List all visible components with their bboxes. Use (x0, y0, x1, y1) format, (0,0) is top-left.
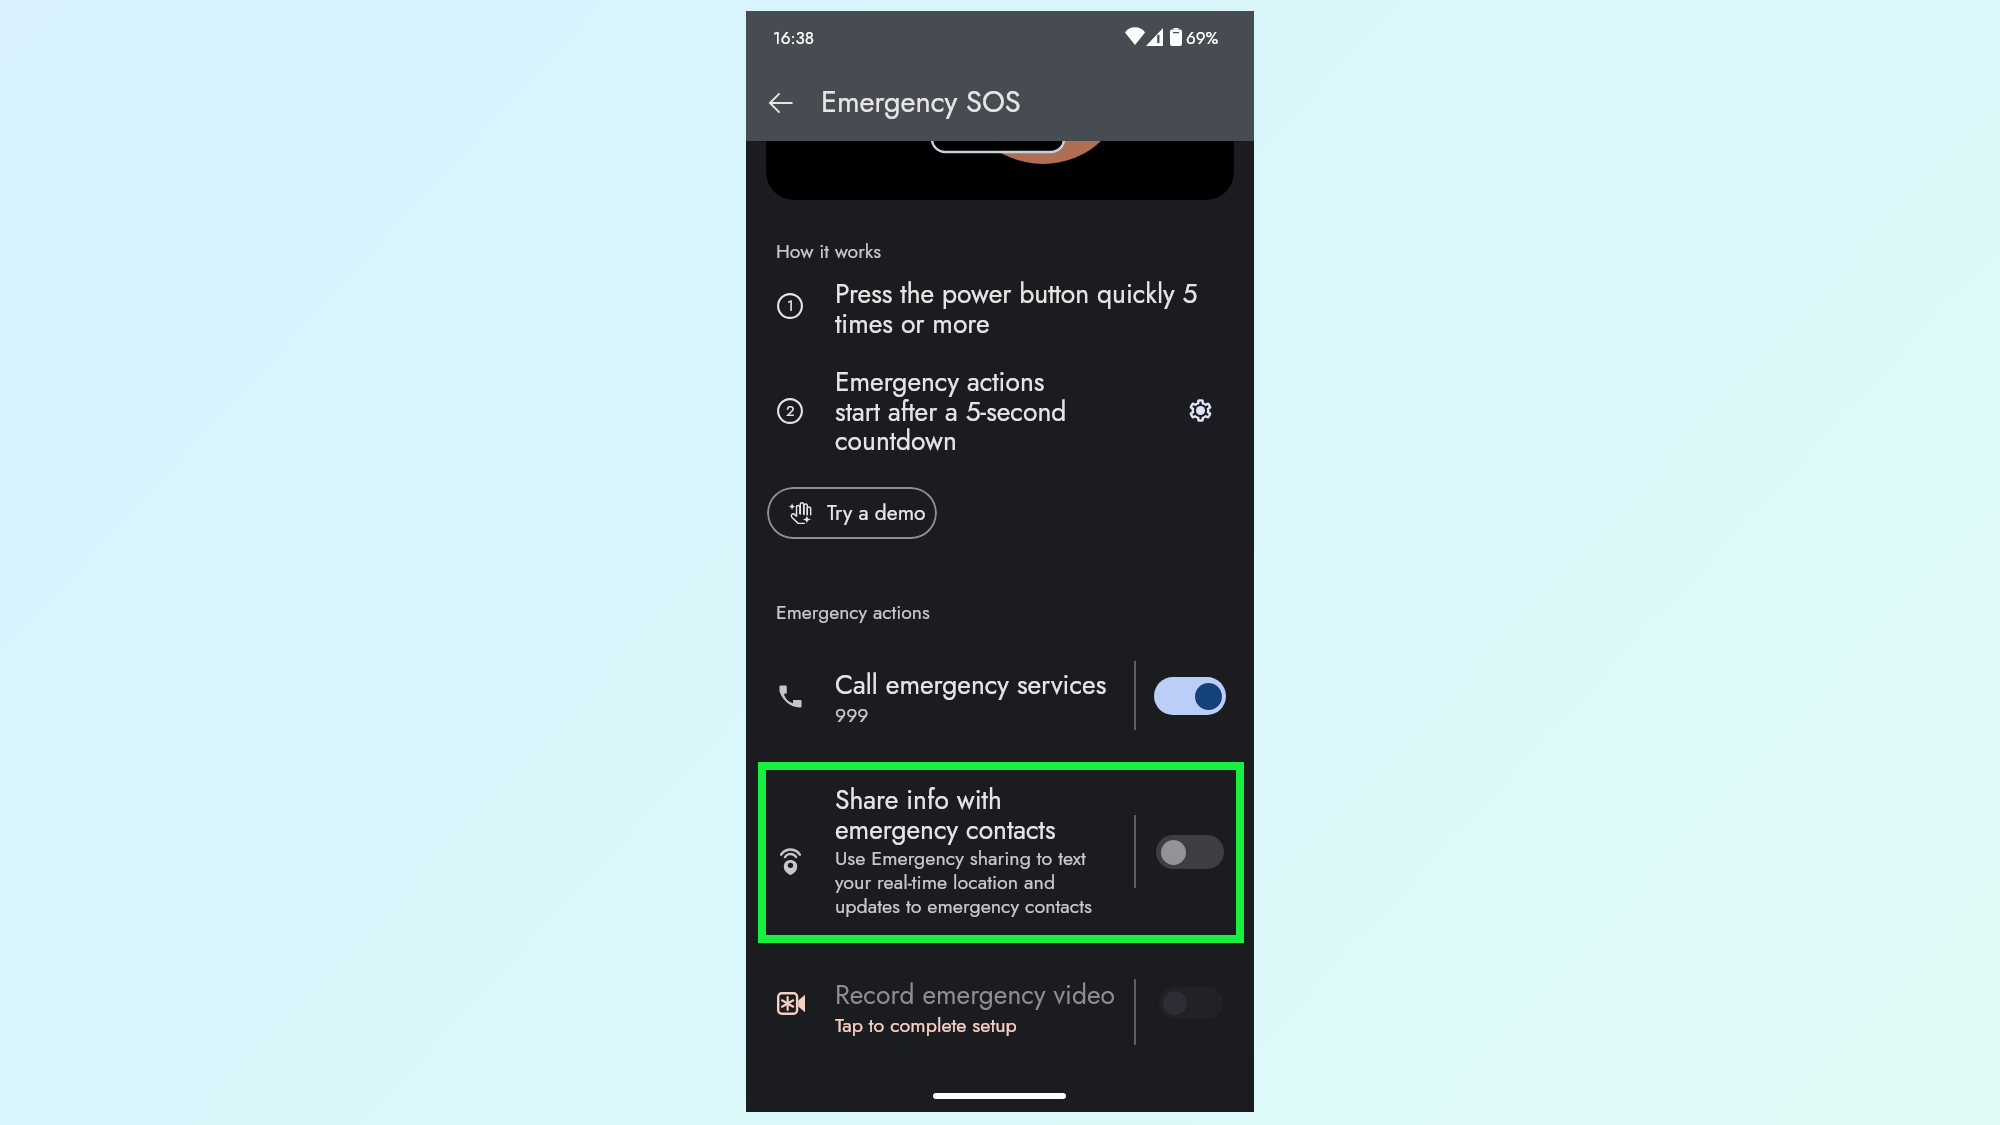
other: Record emergency video toggle, off (1159, 987, 1223, 1019)
staticText: 16:38 (773, 26, 815, 51)
staticText: 999 (835, 701, 869, 729)
button[interactable]: Share info with emergency contacts (746, 762, 1254, 952)
button[interactable]: Call emergency services toggle, on (1154, 677, 1226, 715)
button[interactable]: Settings (1178, 388, 1222, 432)
button[interactable]: Try a demo (767, 487, 937, 539)
staticText: Share info with emergency contacts (835, 781, 1056, 849)
button[interactable]: Share info toggle, off (1156, 835, 1224, 869)
staticText: Tap to complete setup (835, 1011, 1017, 1039)
staticText: Use Emergency sharing to text your real-… (835, 844, 1092, 920)
staticText: Emergency actions start after a 5-second… (835, 363, 1215, 460)
staticText: Press the power button quickly 5 times o… (835, 275, 1215, 343)
staticText: Try a demo (827, 498, 926, 528)
staticText: 69% (1186, 26, 1219, 51)
staticText: 1 (787, 295, 794, 317)
staticText: Call emergency services (835, 666, 1107, 704)
button[interactable]: Call emergency services (746, 661, 1254, 753)
staticText: Emergency actions (776, 598, 930, 626)
staticText: How it works (776, 237, 882, 265)
button[interactable]: Back (757, 79, 805, 127)
staticText: 2 (786, 400, 795, 422)
button[interactable]: Record emergency video (746, 969, 1254, 1061)
staticText: Record emergency video (835, 976, 1115, 1014)
staticText: Emergency SOS (821, 81, 1021, 123)
